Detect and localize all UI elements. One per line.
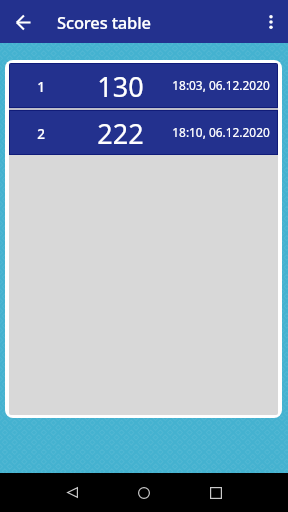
staticText: 130	[78, 68, 163, 105]
staticText: 222	[78, 115, 163, 152]
staticText: 18:10, 06.12.2020	[165, 124, 277, 140]
button[interactable]: 2	[9, 110, 278, 155]
staticText: 18:03, 06.12.2020	[165, 77, 277, 93]
staticText: 1	[10, 78, 72, 96]
button[interactable]: Navigate up	[8, 7, 38, 37]
button[interactable]: Recent apps	[196, 473, 236, 512]
button[interactable]: Home	[124, 473, 164, 512]
button[interactable]: More options	[257, 8, 285, 36]
button[interactable]: 1	[9, 63, 278, 108]
button[interactable]: Back	[52, 473, 92, 512]
staticText: Scores table	[57, 11, 151, 33]
staticText: 2	[10, 125, 72, 143]
